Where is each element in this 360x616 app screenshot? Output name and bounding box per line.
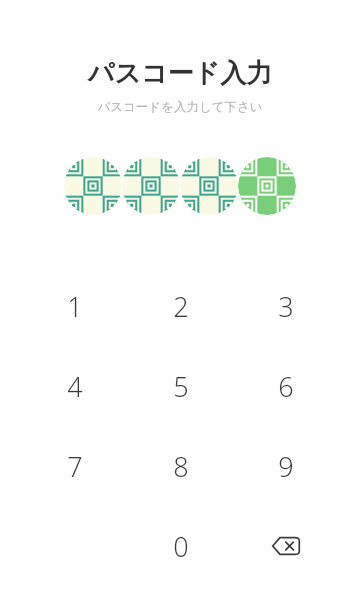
button[interactable]: 7 [22, 426, 128, 506]
button[interactable]: Backspace [233, 506, 338, 586]
button[interactable]: 0 [128, 506, 233, 586]
button[interactable]: 2 [128, 266, 233, 346]
staticText: パスコードを入力して下さい [0, 99, 360, 115]
staticText: 5 [173, 368, 189, 405]
button[interactable]: 3 [233, 266, 338, 346]
staticText: 8 [173, 448, 189, 485]
button[interactable]: 6 [233, 346, 338, 426]
staticText: 3 [278, 288, 294, 325]
staticText: 4 [67, 368, 83, 405]
button[interactable]: 9 [233, 426, 338, 506]
staticText: 2 [173, 288, 189, 325]
staticText: 1 [67, 288, 83, 325]
staticText: 7 [67, 448, 83, 485]
staticText: 0 [173, 528, 189, 565]
button[interactable]: 8 [128, 426, 233, 506]
staticText: 6 [278, 368, 294, 405]
button[interactable]: 4 [22, 346, 128, 426]
button[interactable]: 5 [128, 346, 233, 426]
button[interactable]: 1 [22, 266, 128, 346]
staticText: パスコード入力 [0, 57, 360, 90]
staticText: 9 [278, 448, 294, 485]
